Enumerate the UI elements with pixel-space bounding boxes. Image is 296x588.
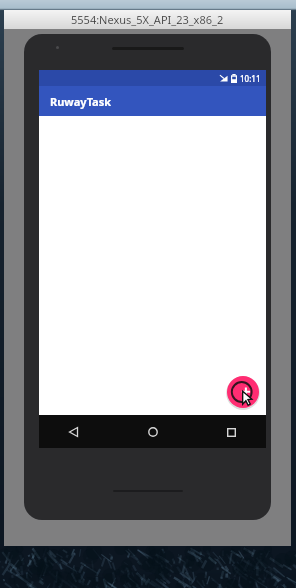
staticText: 5554:Nexus_5X_API_23_x86_2: [71, 12, 224, 27]
staticText: 10:11: [240, 73, 261, 84]
button[interactable]: Home: [140, 419, 166, 445]
button[interactable]: Add task: [227, 376, 259, 408]
staticText: RuwayTask: [50, 94, 112, 109]
button[interactable]: Back: [61, 419, 87, 445]
button[interactable]: RuwayTask: [39, 86, 266, 116]
button[interactable]: Recent apps: [218, 419, 244, 445]
